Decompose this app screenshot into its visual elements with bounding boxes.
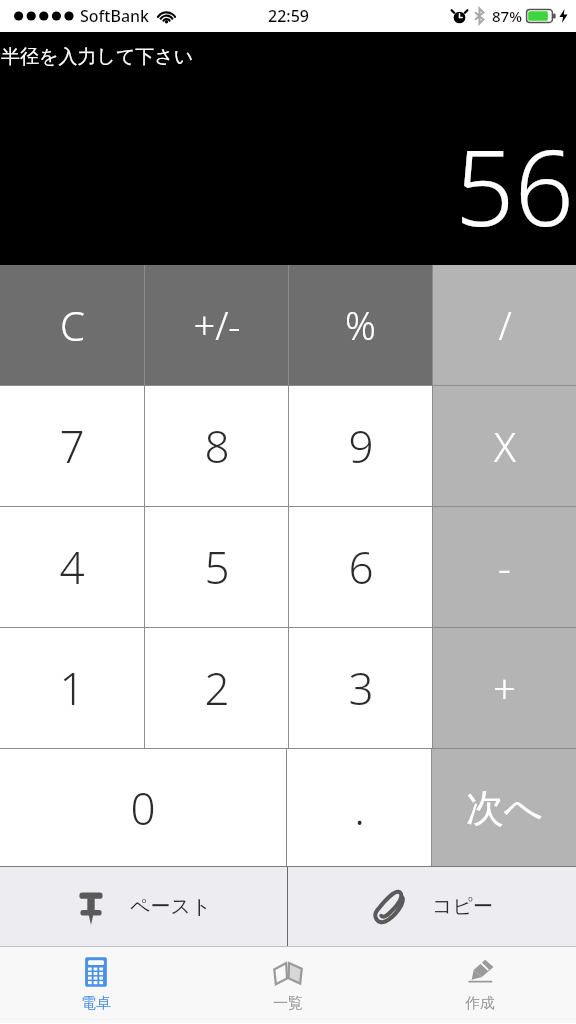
staticText: / [498,299,512,351]
button[interactable]: % [289,265,432,385]
staticText: . [354,778,365,838]
button[interactable]: +/- [145,265,288,385]
button[interactable]: List tab [192,947,384,1023]
staticText: 0 [130,778,156,838]
staticText: 3 [348,658,374,718]
button[interactable]: 1 [0,628,144,748]
staticText: 7 [59,416,85,476]
button[interactable]: . [287,749,431,866]
button[interactable]: X [433,386,576,506]
staticText: 6 [348,537,374,597]
button[interactable]: 5 [145,507,288,627]
staticText: % [345,299,376,351]
button[interactable]: 7 [0,386,144,506]
button[interactable]: 0 [0,749,286,866]
staticText: SoftBank [80,5,150,27]
staticText: 2 [204,658,230,718]
staticText: 一覧 [273,994,303,1013]
staticText: 4 [59,537,85,597]
other: Copy [371,887,409,927]
staticText: 56 [455,115,574,257]
button[interactable]: Create tab [384,947,576,1023]
staticText: 次へ [466,784,543,832]
staticText: 5 [204,537,230,597]
button[interactable]: 4 [0,507,144,627]
button[interactable]: Paste [0,867,287,946]
staticText: 作成 [465,994,495,1013]
staticText: 9 [348,416,374,476]
staticText: - [498,540,511,594]
button[interactable]: 8 [145,386,288,506]
staticText: C [60,298,85,352]
button[interactable]: Calculator tab [0,947,192,1023]
other: Create tab [464,956,496,988]
button[interactable]: + [433,628,576,748]
staticText: X [494,419,516,473]
staticText: 電卓 [81,994,111,1013]
button[interactable]: 9 [289,386,432,506]
staticText: 8 [204,416,230,476]
button[interactable]: Copy [288,867,576,946]
staticText: ペースト [130,894,212,919]
staticText: +/- [193,299,241,351]
staticText: コピー [432,894,493,919]
button[interactable]: C [0,265,144,385]
button[interactable]: 次へ [432,749,576,866]
staticText: 22:59 [268,5,309,27]
other: Paste [75,887,107,927]
staticText: 1 [59,658,85,718]
button[interactable]: 2 [145,628,288,748]
button[interactable]: 6 [289,507,432,627]
button[interactable]: 3 [289,628,432,748]
other: List tab [272,956,304,988]
staticText: 87% [492,6,522,26]
other: Calculator tab [80,956,112,988]
staticText: + [493,661,516,715]
button[interactable]: / [433,265,576,385]
staticText: 半径を入力して下さい [1,45,194,69]
